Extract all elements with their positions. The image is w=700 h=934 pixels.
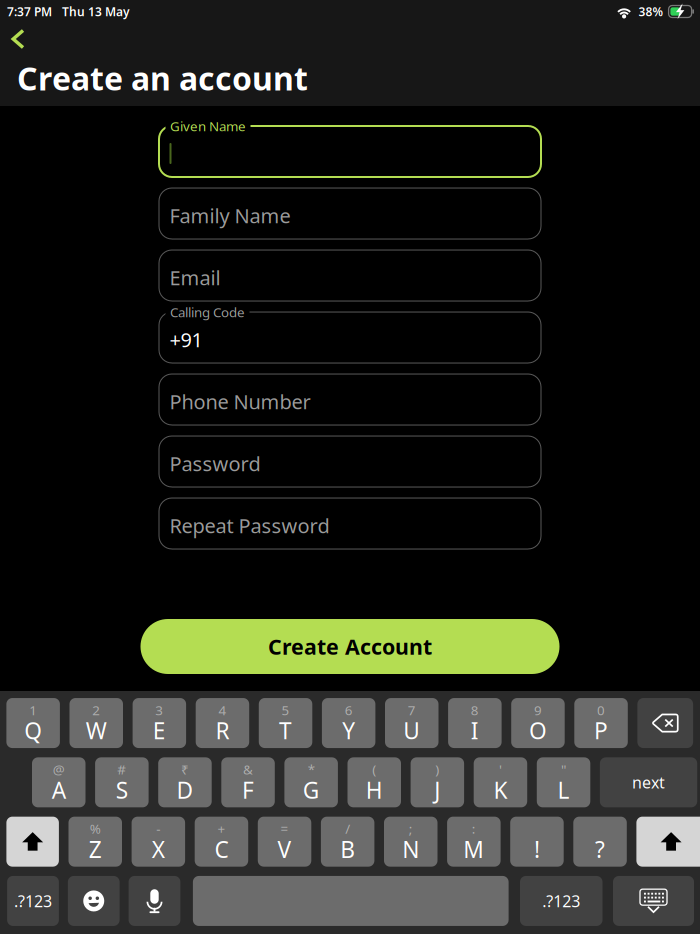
button[interactable]: +91: [159, 312, 541, 363]
staticText: K: [493, 775, 507, 805]
button[interactable]: &: [221, 757, 275, 807]
button[interactable]: 0: [574, 698, 628, 748]
staticText: H: [366, 775, 383, 805]
staticText: B: [340, 834, 355, 864]
staticText: Family Name: [169, 202, 290, 229]
staticText: U: [403, 715, 420, 746]
button[interactable]: .?123: [7, 876, 59, 926]
button[interactable]: ₹: [158, 757, 212, 807]
button[interactable]: next: [600, 757, 697, 807]
button[interactable]: Dictation: [129, 876, 180, 926]
button[interactable]: Create Account: [140, 619, 559, 674]
staticText: 9: [534, 701, 542, 719]
staticText: /: [345, 820, 350, 837]
button[interactable]: Password: [159, 436, 541, 487]
staticText: .?123: [542, 890, 580, 911]
button[interactable]: Shift: [6, 817, 59, 867]
staticText: ): [435, 760, 439, 778]
staticText: P: [594, 715, 608, 746]
staticText: Email: [169, 264, 220, 291]
button[interactable]: 8: [448, 698, 502, 748]
staticText: L: [558, 775, 570, 805]
staticText: 7:37 PM: [7, 3, 52, 19]
button[interactable]: Given Name: [159, 126, 541, 177]
button[interactable]: %: [68, 817, 122, 867]
button[interactable]: 4: [196, 698, 249, 748]
button[interactable]: Hide Keyboard: [613, 876, 694, 926]
staticText: +: [217, 820, 225, 837]
staticText: A: [52, 775, 66, 805]
button[interactable]: +: [195, 817, 248, 867]
button[interactable]: 9: [511, 698, 565, 748]
button[interactable]: Repeat Password: [159, 498, 541, 549]
button[interactable]: #: [95, 757, 149, 807]
button[interactable]: (: [347, 757, 401, 807]
staticText: N: [402, 834, 419, 864]
staticText: %: [90, 820, 101, 837]
staticText: 8: [471, 701, 479, 719]
button[interactable]: 6: [322, 698, 375, 748]
staticText: @: [53, 760, 65, 778]
button[interactable]: ': [474, 757, 527, 807]
staticText: Z: [89, 834, 102, 864]
staticText: Thu 13 May: [62, 3, 130, 19]
button[interactable]: .?123: [520, 876, 602, 926]
staticText: D: [176, 775, 193, 805]
staticText: V: [278, 834, 292, 864]
staticText: O: [529, 715, 547, 746]
staticText: Given Name: [170, 117, 246, 135]
button[interactable]: :: [447, 817, 501, 867]
button[interactable]: Emoji: [68, 876, 120, 926]
staticText: E: [153, 715, 166, 746]
staticText: ;: [409, 820, 413, 837]
staticText: 3: [155, 701, 163, 719]
button[interactable]: space: [193, 876, 509, 926]
button[interactable]: 3: [133, 698, 186, 748]
staticText: .?123: [14, 890, 52, 911]
button[interactable]: *: [284, 757, 338, 807]
button[interactable]: [573, 817, 627, 867]
button[interactable]: @: [32, 757, 85, 807]
staticText: Password: [169, 450, 260, 477]
button[interactable]: ;: [384, 817, 437, 867]
staticText: =: [281, 820, 289, 837]
staticText: ?: [595, 834, 605, 864]
button[interactable]: 7: [385, 698, 438, 748]
button[interactable]: [510, 817, 564, 867]
button[interactable]: 5: [259, 698, 312, 748]
button[interactable]: Phone Number: [159, 374, 541, 425]
staticText: !: [534, 834, 540, 864]
button[interactable]: 1: [6, 698, 60, 748]
button[interactable]: =: [258, 817, 311, 867]
staticText: +91: [169, 326, 202, 353]
button[interactable]: -: [132, 817, 185, 867]
staticText: I: [471, 715, 479, 746]
staticText: ': [499, 760, 502, 778]
button[interactable]: Back: [0, 24, 36, 53]
button[interactable]: Email: [159, 250, 541, 301]
button[interactable]: ": [537, 757, 590, 807]
staticText: 2: [92, 701, 100, 719]
staticText: J: [434, 775, 440, 805]
staticText: ": [561, 760, 566, 778]
button[interactable]: ): [411, 757, 464, 807]
staticText: C: [214, 834, 228, 864]
staticText: 38%: [639, 3, 664, 19]
staticText: 5: [282, 701, 290, 719]
staticText: 7: [408, 701, 416, 719]
button[interactable]: Family Name: [159, 188, 541, 239]
button[interactable]: 2: [69, 698, 123, 748]
staticText: next: [632, 772, 665, 793]
staticText: 0: [597, 701, 605, 719]
staticText: S: [116, 775, 128, 805]
staticText: G: [303, 775, 320, 805]
staticText: 4: [218, 701, 226, 719]
staticText: F: [242, 775, 254, 805]
button[interactable]: Delete: [637, 698, 693, 748]
staticText: Create Account: [268, 632, 432, 661]
staticText: Phone Number: [169, 388, 310, 415]
button[interactable]: Shift: [636, 817, 700, 867]
button[interactable]: /: [321, 817, 374, 867]
